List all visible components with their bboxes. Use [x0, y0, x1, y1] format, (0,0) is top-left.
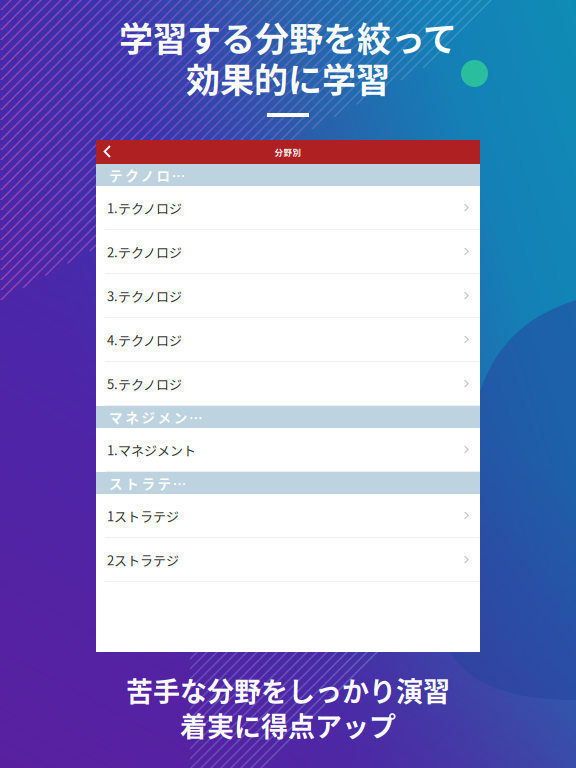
button[interactable]: Back — [96, 140, 119, 164]
staticText: 4.テクノロジ — [107, 330, 182, 349]
staticText: 学習する分野を絞って — [119, 12, 457, 62]
button[interactable]: 1.マネジメント — [96, 428, 480, 472]
button[interactable]: 2.テクノロジ — [96, 230, 480, 274]
staticText: テクノロジ — [109, 165, 187, 185]
staticText: マネジメント — [109, 407, 204, 427]
button[interactable]: 4.テクノロジ — [96, 318, 480, 362]
staticText: 2.テクノロジ — [107, 242, 182, 261]
staticText: 5.テクノロジ — [107, 374, 182, 393]
staticText: 苦手な分野をしっかり演習 — [126, 670, 450, 710]
staticText: 1.マネジメント — [107, 440, 196, 459]
button[interactable]: 5.テクノロジ — [96, 362, 480, 406]
staticText: 着実に得点アップ — [180, 705, 396, 745]
button[interactable]: 1.テクノロジ — [96, 186, 480, 230]
button[interactable]: 2ストラテジ — [96, 538, 480, 582]
staticText: 効果的に学習 — [186, 53, 390, 103]
button[interactable]: 3.テクノロジ — [96, 274, 480, 318]
staticText: 1.テクノロジ — [107, 198, 182, 217]
staticText: 2ストラテジ — [107, 550, 179, 569]
staticText: ストラテジ — [109, 473, 188, 493]
staticText: 1ストラテジ — [107, 506, 179, 525]
staticText: 分野別 — [274, 146, 301, 158]
staticText: 3.テクノロジ — [107, 286, 182, 305]
button[interactable]: 1ストラテジ — [96, 494, 480, 538]
